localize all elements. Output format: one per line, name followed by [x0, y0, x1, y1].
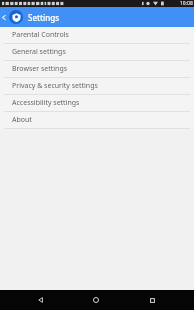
- staticText: About: [12, 115, 32, 125]
- button[interactable]: General settings: [0, 44, 194, 60]
- staticText: 10:08: [180, 0, 193, 7]
- button[interactable]: Parental Controls: [0, 27, 194, 43]
- button[interactable]: Navigate up: [0, 7, 9, 27]
- staticText: Browser settings: [12, 64, 68, 74]
- button[interactable]: Privacy & security settings: [0, 78, 194, 94]
- staticText: Parental Controls: [12, 30, 69, 40]
- staticText: Privacy & security settings: [12, 81, 98, 91]
- button[interactable]: Accessibility settings: [0, 95, 194, 111]
- button[interactable]: Recent apps: [138, 290, 166, 310]
- button[interactable]: Home: [82, 290, 110, 310]
- staticText: General settings: [12, 47, 66, 57]
- button[interactable]: Back: [27, 290, 55, 310]
- button[interactable]: About: [0, 112, 194, 128]
- staticText: Accessibility settings: [12, 98, 80, 108]
- button[interactable]: Browser settings: [0, 61, 194, 77]
- staticText: Settings: [28, 12, 60, 23]
- button[interactable]: App icon: [9, 10, 23, 24]
